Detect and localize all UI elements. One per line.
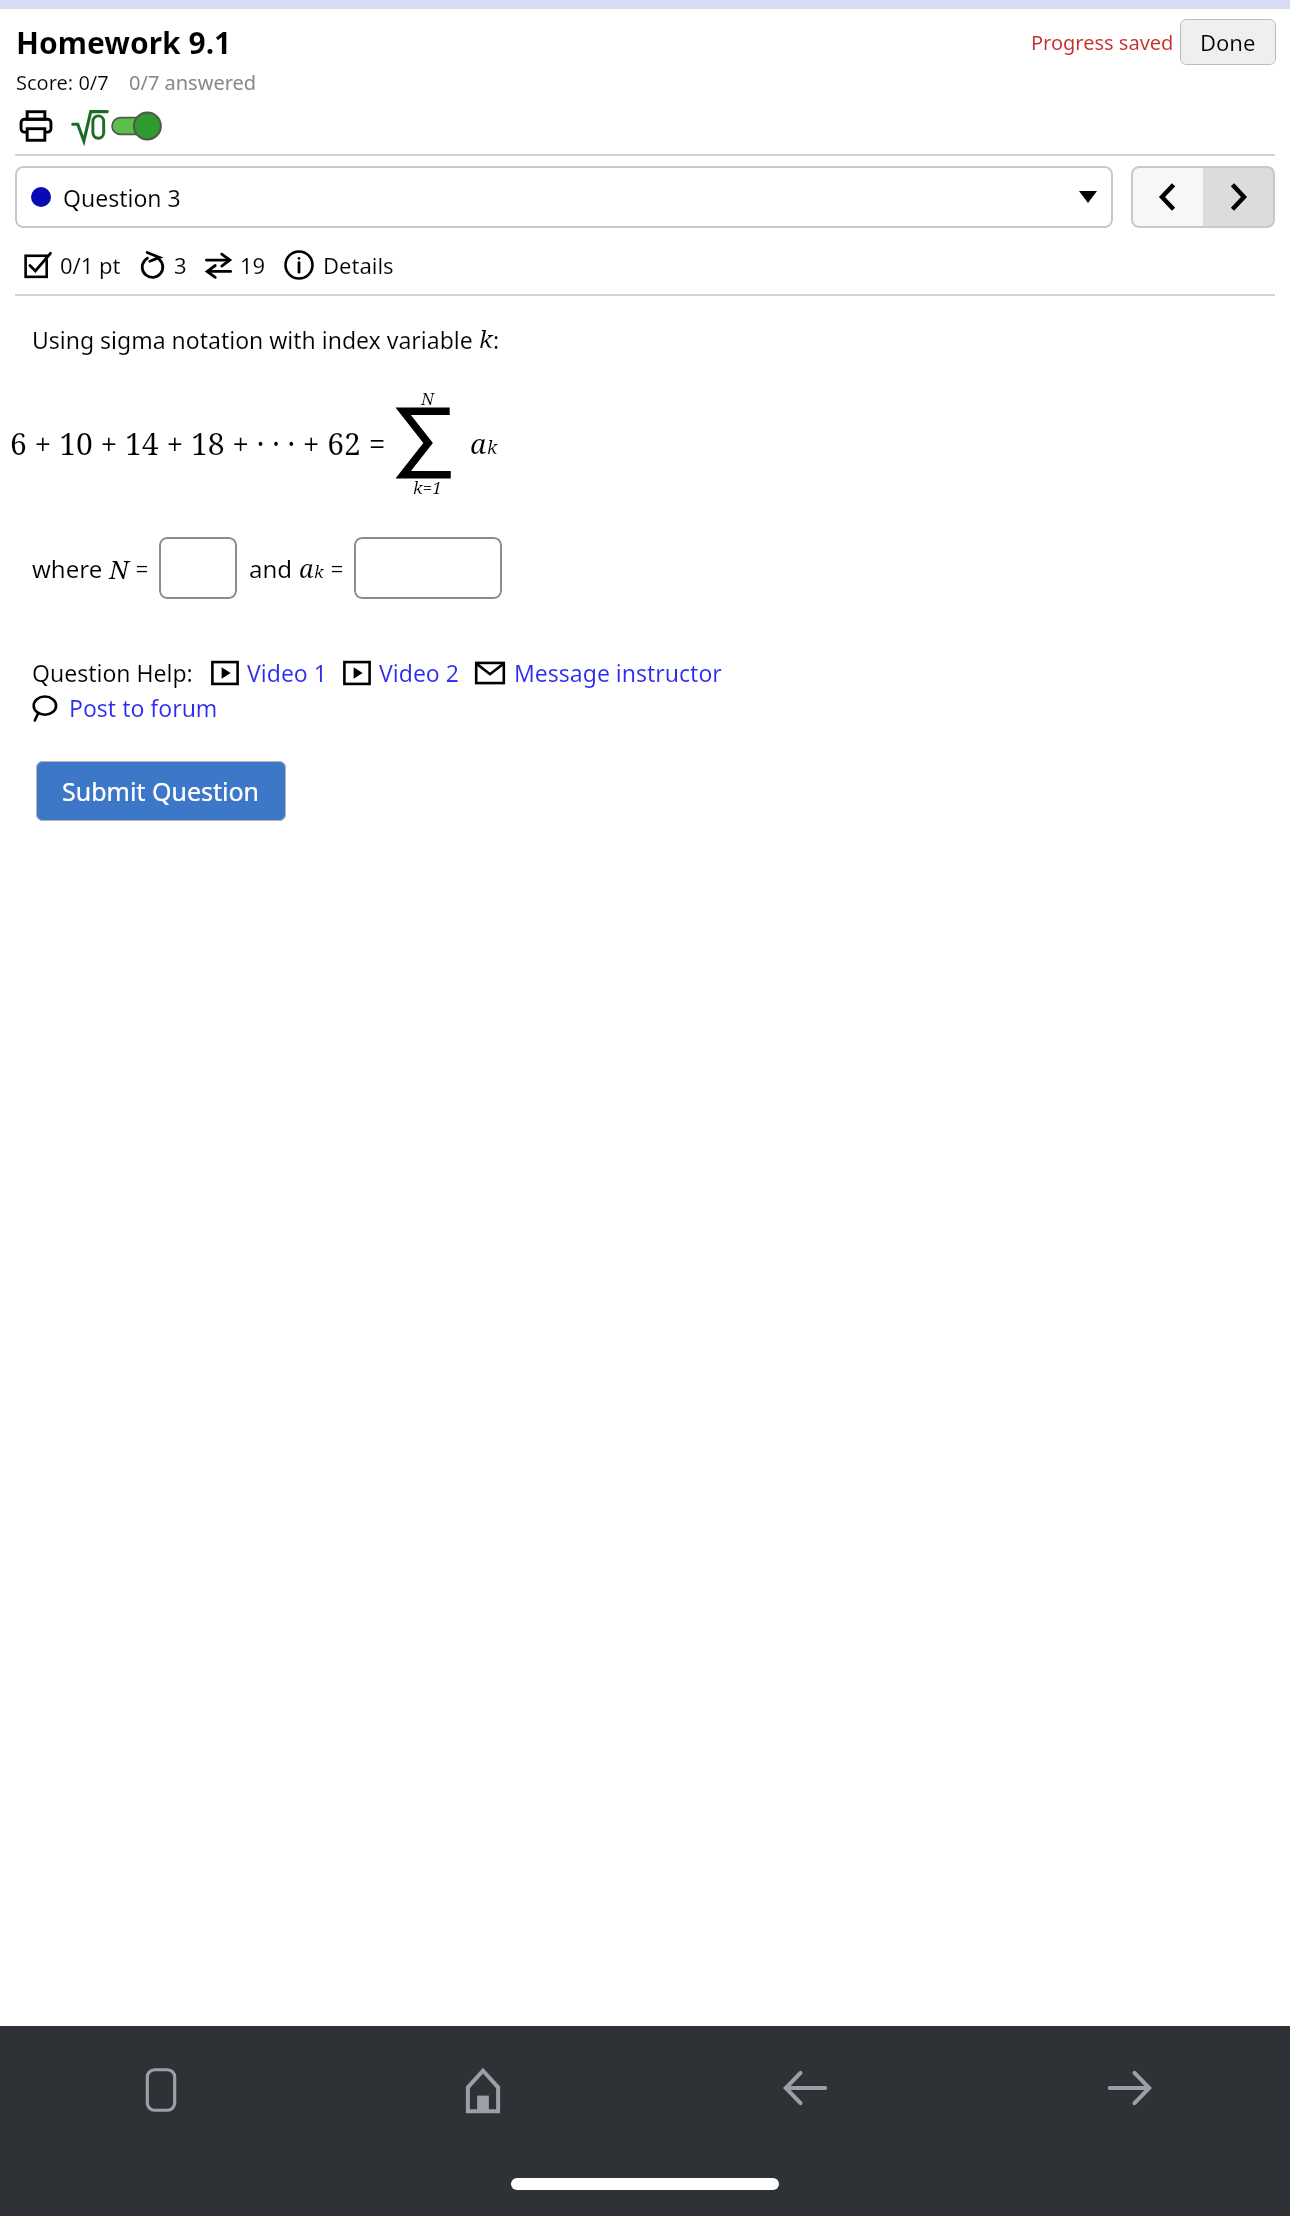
staticText: k [479,322,493,355]
staticText: 0/1 pt [60,250,121,280]
staticText: 6 + 10 + 14 + 18 + · · · + 62 = [10,423,386,464]
staticText: Message instructor [514,657,722,688]
button[interactable]: Answer field [159,537,237,599]
staticText: a [299,551,314,585]
button[interactable]: Video 1 [211,657,327,688]
button[interactable]: Video 2 [343,657,459,688]
staticText: Progress saved [1031,29,1174,56]
button[interactable]: Tabs [137,2062,185,2118]
staticText: Submit Question [62,774,260,808]
staticText: 3 [174,250,187,280]
staticText: k [314,560,324,583]
staticText: Done [1200,27,1256,57]
staticText: = [129,552,155,585]
staticText: Question Help: [32,657,193,688]
staticText: Video 1 [247,657,327,688]
staticText: 0/7 answered [129,69,257,96]
staticText: : [493,324,500,355]
staticText: k=1 [413,476,442,499]
staticText: N [109,551,129,586]
button[interactable]: Toggle math input [112,111,164,141]
button[interactable]: Done [1180,19,1276,65]
button[interactable]: Previous question [1131,166,1203,228]
staticText: Video 2 [379,657,459,688]
button[interactable]: Next question [1203,166,1275,228]
button[interactable]: Post to forum [32,692,218,723]
button[interactable]: Details [284,250,394,280]
staticText: N [421,387,434,410]
staticText: = [324,552,350,585]
other: Math input [70,106,110,146]
staticText: k [487,435,498,460]
staticText: 19 [240,250,266,280]
button[interactable]: Home [456,2062,510,2120]
staticText: and [249,552,299,585]
staticText: a [470,424,487,462]
button[interactable]: Question 3 [15,166,1113,228]
staticText: Details [323,250,394,280]
button[interactable]: Forward [1100,2062,1158,2114]
staticText: Question 3 [63,182,181,213]
staticText: Using sigma notation with index variable [32,324,479,355]
staticText: where [32,552,109,585]
button[interactable]: Message instructor [475,657,722,688]
button[interactable]: Back [777,2062,835,2114]
button[interactable]: Print [16,106,56,146]
staticText: Post to forum [69,692,218,723]
button[interactable]: Answer field [354,537,502,599]
staticText: Homework 9.1 [16,22,232,63]
staticText: Score: 0/7 [16,69,109,96]
button[interactable]: Submit Question [36,761,286,821]
